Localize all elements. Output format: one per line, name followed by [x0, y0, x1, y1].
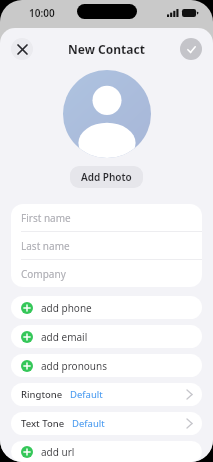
- staticText: add pronouns: [41, 359, 108, 373]
- staticText: add email: [41, 330, 88, 344]
- staticText: add phone: [41, 301, 92, 315]
- button[interactable]: Add Photo: [81, 170, 132, 184]
- button[interactable]: Done: [180, 38, 202, 60]
- staticText: Company: [21, 267, 66, 281]
- staticText: Default: [72, 417, 105, 430]
- staticText: add url: [41, 445, 75, 459]
- button[interactable]: add url: [11, 441, 202, 462]
- staticText: First name: [21, 211, 71, 225]
- staticText: New Contact: [68, 41, 145, 57]
- button[interactable]: Company: [11, 260, 202, 287]
- staticText: Text Tone: [21, 417, 65, 430]
- button[interactable]: Ringtone: [11, 383, 202, 406]
- button[interactable]: Last name: [11, 232, 202, 260]
- button[interactable]: add phone: [11, 296, 202, 319]
- staticText: Ringtone: [21, 388, 63, 401]
- button[interactable]: Text Tone: [11, 412, 202, 435]
- staticText: Last name: [21, 239, 70, 253]
- button[interactable]: add email: [11, 325, 202, 348]
- button[interactable]: add pronouns: [11, 354, 202, 377]
- button[interactable]: Close: [11, 38, 33, 60]
- staticText: Default: [70, 388, 103, 401]
- button[interactable]: First name: [11, 204, 202, 232]
- staticText: Add Photo: [81, 170, 132, 184]
- staticText: 10:00: [29, 6, 55, 20]
- button[interactable]: Contact photo: [63, 70, 151, 158]
